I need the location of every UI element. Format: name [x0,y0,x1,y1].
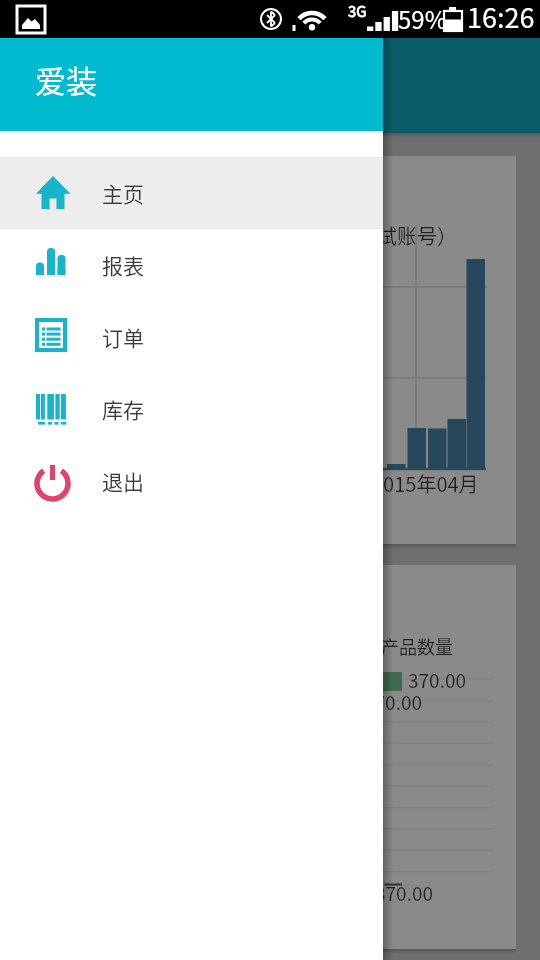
staticText: 订单 [102,322,144,352]
button[interactable]: 订单 [0,301,383,373]
staticText: 报表 [102,250,144,280]
staticText: 退出 [102,466,144,496]
staticText: 16:26 [467,0,535,35]
button[interactable]: 报表 [0,229,383,301]
staticText: 370.00 [408,666,467,694]
staticText: 370.00 [364,688,423,716]
staticText: 59% [398,1,447,36]
staticText: 370.00 [375,879,434,907]
staticText: 产品数量 [381,633,453,659]
staticText: （测试账号） [337,221,457,250]
button[interactable]: 主页 [0,157,383,229]
button[interactable] [383,38,540,960]
button[interactable]: 退出 [0,445,383,517]
staticText: 库存 [102,394,144,424]
staticText: 3G [348,0,367,22]
staticText: 主页 [102,178,144,208]
staticText: 爱装 [35,57,97,102]
staticText: 2015年04月 [372,469,479,498]
button[interactable]: 库存 [0,373,383,445]
